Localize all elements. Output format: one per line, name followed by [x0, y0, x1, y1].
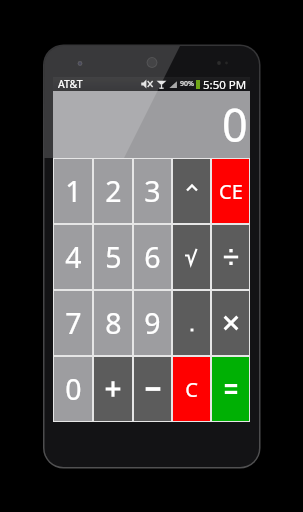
staticText: AT&T: [58, 77, 83, 91]
button[interactable]: 8: [94, 291, 132, 355]
staticText: 6: [144, 238, 161, 277]
button[interactable]: 6: [134, 225, 171, 289]
button[interactable]: 7: [54, 291, 92, 355]
button[interactable]: Minus: [134, 357, 171, 421]
staticText: CE: [219, 178, 243, 205]
staticText: 7: [65, 304, 82, 343]
button[interactable]: 3: [134, 159, 171, 223]
button[interactable]: Plus: [94, 357, 132, 421]
staticText: 8: [105, 304, 122, 343]
button[interactable]: Power: [173, 159, 210, 223]
staticText: 9: [144, 304, 161, 343]
staticText: 5:50 PM: [203, 77, 247, 91]
button[interactable]: Decimal point: [173, 291, 210, 355]
staticText: C: [185, 376, 198, 403]
button[interactable]: Divide: [212, 225, 249, 289]
button[interactable]: 0: [54, 357, 92, 421]
staticText: 90%: [180, 79, 194, 89]
staticText: 5: [105, 238, 122, 277]
staticText: 1: [65, 172, 82, 211]
button[interactable]: 4: [54, 225, 92, 289]
staticText: 4: [65, 238, 82, 277]
button[interactable]: C: [173, 357, 210, 421]
button[interactable]: 5: [94, 225, 132, 289]
staticText: 3: [144, 172, 161, 211]
staticText: 0: [65, 370, 82, 409]
button[interactable]: 1: [54, 159, 92, 223]
button[interactable]: 9: [134, 291, 171, 355]
button[interactable]: CE: [212, 159, 249, 223]
staticText: 0: [222, 94, 248, 155]
button[interactable]: 2: [94, 159, 132, 223]
button[interactable]: Multiply: [212, 291, 249, 355]
button[interactable]: Square root: [173, 225, 210, 289]
staticText: 2: [105, 172, 122, 211]
button[interactable]: Equals: [212, 357, 249, 421]
